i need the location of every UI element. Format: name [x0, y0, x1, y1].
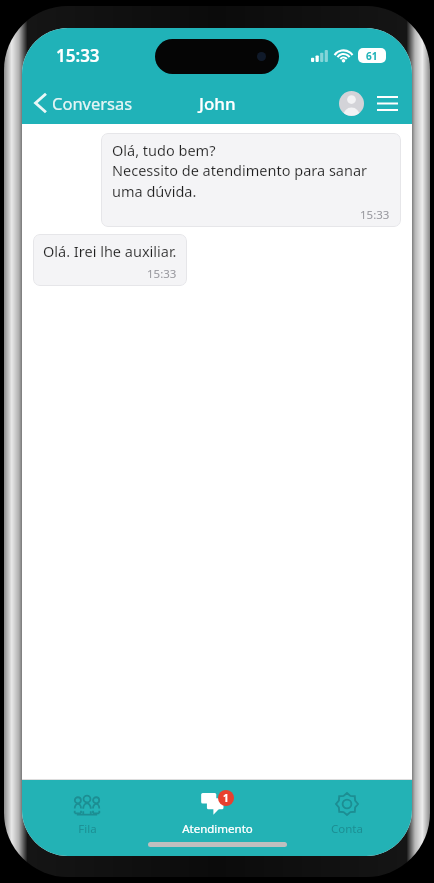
staticText: John [199, 92, 236, 115]
button[interactable]: Olá, tudo bem? Necessito de atendimento … [101, 133, 401, 227]
staticText: 15:33 [360, 207, 390, 223]
button[interactable]: Conversas [22, 88, 143, 118]
button[interactable]: Olá. Irei lhe auxiliar. [33, 234, 187, 286]
staticText: Conversas [52, 92, 133, 114]
staticText: 15:33 [56, 44, 100, 67]
button[interactable]: Conta [282, 788, 412, 841]
staticText: Olá. Irei lhe auxiliar. [43, 241, 177, 261]
button[interactable]: Fila [22, 788, 152, 841]
button[interactable]: Menu [374, 90, 400, 116]
staticText: Conta [331, 821, 363, 837]
staticText: Fila [78, 821, 97, 837]
staticText: 1 [223, 791, 229, 805]
button[interactable]: Profile [339, 91, 364, 116]
button[interactable]: 1 [152, 788, 282, 841]
staticText: 15:33 [147, 266, 177, 282]
staticText: 61 [366, 49, 378, 63]
staticText: Atendimento [182, 821, 253, 837]
staticText: Olá, tudo bem? Necessito de atendimento … [112, 140, 390, 202]
